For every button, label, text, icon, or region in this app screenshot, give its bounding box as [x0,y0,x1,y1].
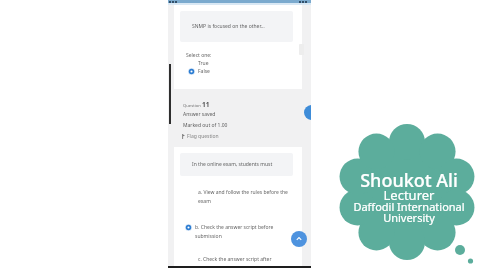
button[interactable]: c. Check the answer script after [185,256,295,263]
staticText: c. Check the answer script after [198,256,272,263]
staticText: Daffodil International University [339,199,479,225]
staticText: Flag question [187,133,219,140]
button[interactable]: Scroll to top [291,231,307,247]
staticText: Shoukot Ali [339,168,479,193]
staticText: Marked out of 1.00 [183,122,228,129]
staticText: Answer saved [183,111,216,118]
staticText: Select one: [186,52,212,59]
staticText: b. Check the answer script before submis… [195,224,274,239]
staticText: a. View and follow the rules before the … [198,189,288,204]
staticText: True [198,60,209,67]
button[interactable]: Next question [304,105,311,120]
staticText: Question [183,103,201,109]
button[interactable]: False [188,68,210,75]
staticText: False [198,68,210,75]
staticText: Lecturer [339,186,479,204]
button[interactable]: b. Check the answer script before submis… [185,224,295,239]
staticText: 11 [202,100,210,109]
staticText: SNMP is focused on the other… [192,23,265,30]
button[interactable]: Flag question [182,133,219,140]
button[interactable]: a. View and follow the rules before the … [185,189,295,204]
staticText: In the online exam, students must [192,161,273,168]
